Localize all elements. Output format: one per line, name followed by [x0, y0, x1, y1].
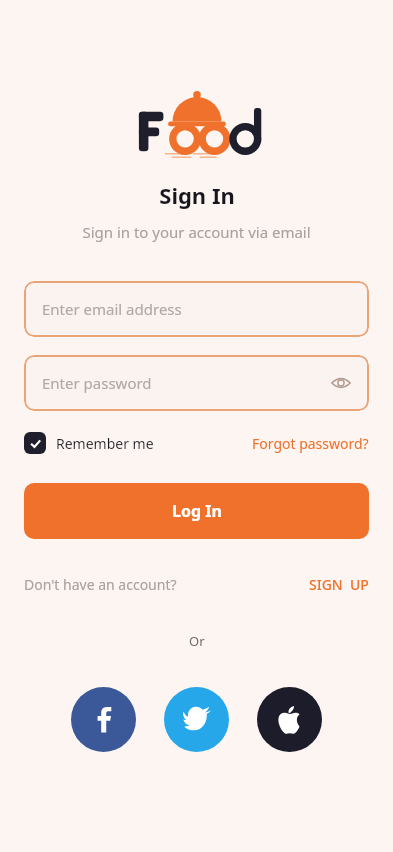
- staticText: Sign In: [159, 180, 235, 210]
- staticText: Enter email address: [42, 299, 182, 319]
- staticText: Log In: [172, 500, 222, 522]
- staticText: Sign in to your account via email: [82, 222, 311, 242]
- button[interactable]: Sign in with Facebook: [71, 687, 136, 752]
- other: Show password: [331, 373, 351, 393]
- staticText: Remember me: [56, 434, 154, 453]
- button[interactable]: Enter password: [24, 355, 369, 411]
- button[interactable]: Sign in with Apple: [257, 687, 322, 752]
- staticText: SIGN UP: [309, 575, 369, 594]
- button[interactable]: Forgot password?: [252, 434, 369, 453]
- staticText: Or: [189, 632, 205, 650]
- button[interactable]: Sign in with Twitter: [164, 687, 229, 752]
- button[interactable]: Enter email address: [24, 281, 369, 337]
- button[interactable]: SIGN UP: [309, 575, 369, 594]
- button[interactable]: Log In: [24, 483, 369, 539]
- button[interactable]: Remember me: [24, 432, 154, 454]
- staticText: Enter password: [42, 373, 152, 393]
- staticText: Forgot password?: [252, 434, 369, 453]
- staticText: Don't have an account?: [24, 575, 177, 594]
